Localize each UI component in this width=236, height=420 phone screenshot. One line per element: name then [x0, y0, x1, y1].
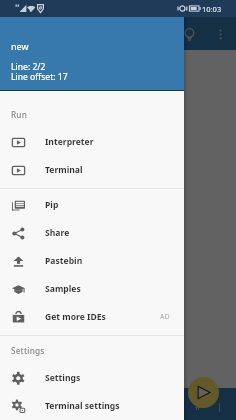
button[interactable]: Share — [0, 219, 184, 247]
staticText: Terminal — [45, 164, 83, 176]
button[interactable]: Insert / — [88, 390, 99, 420]
staticText: Samples — [45, 283, 81, 295]
button[interactable]: Insert | — [214, 390, 225, 420]
button[interactable]: Insert # — [192, 390, 203, 420]
staticText: / — [92, 400, 96, 412]
button[interactable]: Get more IDEs — [0, 303, 184, 331]
button[interactable]: Pip — [0, 191, 184, 219]
staticText: + — [80, 400, 86, 412]
button[interactable]: Settings — [0, 364, 184, 392]
staticText: Settings — [45, 372, 81, 384]
button[interactable]: Insert " — [22, 390, 33, 420]
button[interactable]: Insert < — [110, 390, 121, 420]
staticText: Pastebin — [45, 255, 83, 267]
staticText: : — [15, 400, 18, 412]
staticText: Interpreter — [45, 136, 94, 148]
staticText: Share — [45, 227, 70, 239]
staticText: # — [195, 400, 201, 412]
staticText: Terminal settings — [45, 400, 120, 412]
button[interactable]: Insert - — [66, 390, 77, 420]
button[interactable]: Samples — [0, 275, 184, 303]
staticText: Pip — [45, 199, 59, 211]
staticText: Line: 2/2 — [11, 61, 46, 73]
button[interactable]: Insert : — [11, 390, 22, 420]
staticText: Get more IDEs — [45, 311, 106, 323]
staticText: _ — [59, 400, 63, 412]
button[interactable]: Pastebin — [0, 247, 184, 275]
staticText: new — [11, 40, 29, 52]
staticText: Run — [11, 109, 28, 120]
staticText: 10:03 — [202, 4, 222, 14]
staticText: = — [47, 400, 53, 412]
staticText: Settings — [11, 345, 45, 356]
button[interactable]: Insert = — [44, 390, 55, 420]
button[interactable]: Insert + — [77, 390, 88, 420]
staticText: - — [70, 400, 73, 412]
staticText: * — [102, 400, 107, 412]
button[interactable]: Insert * — [99, 390, 110, 420]
button[interactable]: Interpreter — [0, 128, 184, 156]
staticText: < — [113, 400, 119, 412]
button[interactable]: Run — [188, 377, 219, 408]
button[interactable]: Hints — [174, 19, 204, 49]
staticText: | — [217, 400, 222, 412]
button[interactable]: More options — [206, 20, 234, 48]
staticText: Line offset: 17 — [11, 71, 68, 83]
button[interactable]: Terminal settings — [0, 392, 184, 420]
button[interactable]: Insert _ — [55, 390, 66, 420]
button[interactable]: Terminal — [0, 156, 184, 184]
staticText: AD — [160, 312, 170, 322]
